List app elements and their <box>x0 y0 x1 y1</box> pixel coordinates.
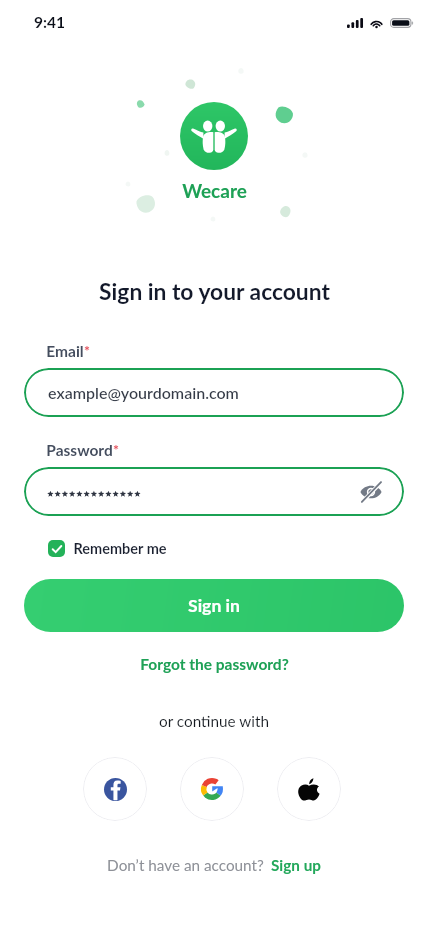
staticText: Password <box>46 441 113 460</box>
staticText: Don’t have an account? <box>107 856 264 874</box>
staticText: 9:41 <box>34 13 65 32</box>
button[interactable]: Show password <box>356 477 386 507</box>
button[interactable]: Continue with Facebook <box>83 757 147 821</box>
staticText: Wecare <box>182 179 247 202</box>
staticText: * <box>84 342 90 359</box>
button[interactable]: Sign up <box>271 856 321 874</box>
staticText: Remember me <box>73 540 167 557</box>
button[interactable]: Remember me <box>44 536 171 561</box>
button[interactable]: Continue with Apple <box>277 757 341 821</box>
button[interactable]: example@yourdomain.com <box>24 368 404 417</box>
button[interactable]: Continue with Google <box>180 757 244 821</box>
staticText: or continue with <box>159 712 269 730</box>
staticText: Email <box>46 342 84 361</box>
button[interactable]: Sign in <box>24 579 404 632</box>
button[interactable]: Forgot the password? <box>132 651 297 678</box>
staticText: Sign in to your account <box>99 277 330 304</box>
button[interactable]: Show password <box>24 467 404 516</box>
staticText: * <box>113 441 119 458</box>
staticText: Forgot the password? <box>140 655 289 674</box>
staticText: Sign up <box>271 856 321 874</box>
staticText: Sign in <box>188 595 240 616</box>
staticText: example@yourdomain.com <box>48 383 239 402</box>
